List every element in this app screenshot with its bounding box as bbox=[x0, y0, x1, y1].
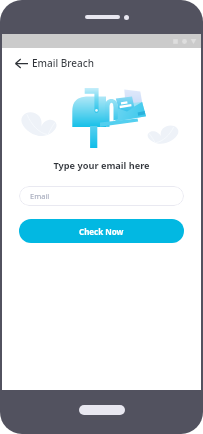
staticText: Type your email here bbox=[2, 159, 201, 172]
staticText: Email Breach bbox=[32, 56, 94, 70]
staticText: Email bbox=[30, 191, 50, 201]
staticText: Check Now bbox=[79, 226, 124, 237]
button[interactable]: Back bbox=[11, 53, 31, 73]
button[interactable]: Email bbox=[19, 186, 184, 206]
button[interactable]: Check Now bbox=[19, 219, 184, 243]
